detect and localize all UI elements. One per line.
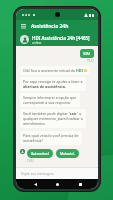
button[interactable]: Sempre informarei a opção que xyxy=(20,93,80,107)
button[interactable]: SIM xyxy=(80,49,94,58)
staticText: HDI Assistência 24h [4465] xyxy=(32,35,90,41)
staticText: Digite sua mensagem xyxy=(21,172,54,176)
button[interactable]: Back xyxy=(31,180,39,188)
button[interactable]: Você também pode digitar xyxy=(20,109,86,128)
staticText: Olá! Sou o assistente virtual da xyxy=(23,68,76,73)
staticText: abertura de assistência. xyxy=(23,84,66,89)
button[interactable]: Automóvel xyxy=(27,149,53,158)
staticText: 19:52 xyxy=(87,59,94,63)
staticText: online xyxy=(32,41,42,45)
button[interactable]: Motocicl. xyxy=(56,149,79,158)
staticText: atendimento. xyxy=(23,121,46,126)
staticText: Por aqui consigo te ajudar a fazer a xyxy=(23,79,83,84)
staticText: Sempre informarei a opção que xyxy=(23,95,77,100)
button[interactable]: Home xyxy=(53,180,61,188)
staticText: a xyxy=(78,111,81,116)
staticText: 19:52 xyxy=(27,159,34,163)
staticText: assistência? xyxy=(23,138,43,143)
button[interactable]: HDI Assistência 24h [4465] xyxy=(16,33,98,46)
staticText: SIM xyxy=(83,51,91,56)
staticText: Motocicl. xyxy=(60,151,75,156)
staticText: HDI xyxy=(76,68,83,73)
button[interactable]: Menu xyxy=(20,23,27,30)
staticText: 'sair' xyxy=(69,111,78,116)
staticText: Você também pode digitar xyxy=(23,111,69,116)
staticText: Automóvel xyxy=(31,151,49,156)
staticText: Para qual veículo você precisa de xyxy=(23,133,79,138)
button[interactable]: Por aqui consigo te ajudar a fazer a xyxy=(20,77,86,91)
staticText: corresponde a sua resposta. xyxy=(23,100,71,105)
button[interactable]: Olá! Sou o assistente virtual da xyxy=(20,66,90,75)
staticText: qualquer momento, para finalizar o xyxy=(23,116,83,121)
staticText: Assistência 24h xyxy=(31,23,69,30)
button[interactable]: Recent apps xyxy=(76,180,84,188)
button[interactable]: Para qual veículo você precisa de xyxy=(20,131,82,145)
